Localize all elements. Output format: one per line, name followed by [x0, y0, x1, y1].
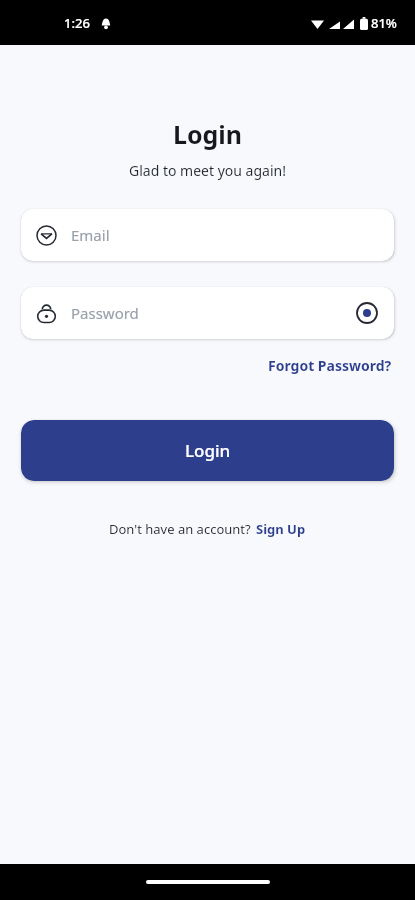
- staticText: Password: [71, 303, 354, 323]
- staticText: Forgot Password?: [268, 356, 392, 375]
- staticText: Don't have an account?: [109, 520, 255, 538]
- button[interactable]: Password: [21, 287, 394, 339]
- staticText: Sign Up: [256, 520, 306, 538]
- button[interactable]: Sign Up: [255, 517, 307, 541]
- button[interactable]: Email: [21, 209, 394, 261]
- staticText: Login: [0, 117, 415, 151]
- staticText: 1:26: [64, 14, 90, 32]
- staticText: Login: [185, 439, 231, 462]
- button[interactable]: Login: [21, 420, 394, 481]
- staticText: Email: [71, 225, 380, 245]
- staticText: Glad to meet you again!: [0, 161, 415, 180]
- button[interactable]: Toggle password visibility: [354, 300, 380, 326]
- button[interactable]: Forgot Password?: [266, 353, 394, 378]
- staticText: 81%: [371, 14, 397, 32]
